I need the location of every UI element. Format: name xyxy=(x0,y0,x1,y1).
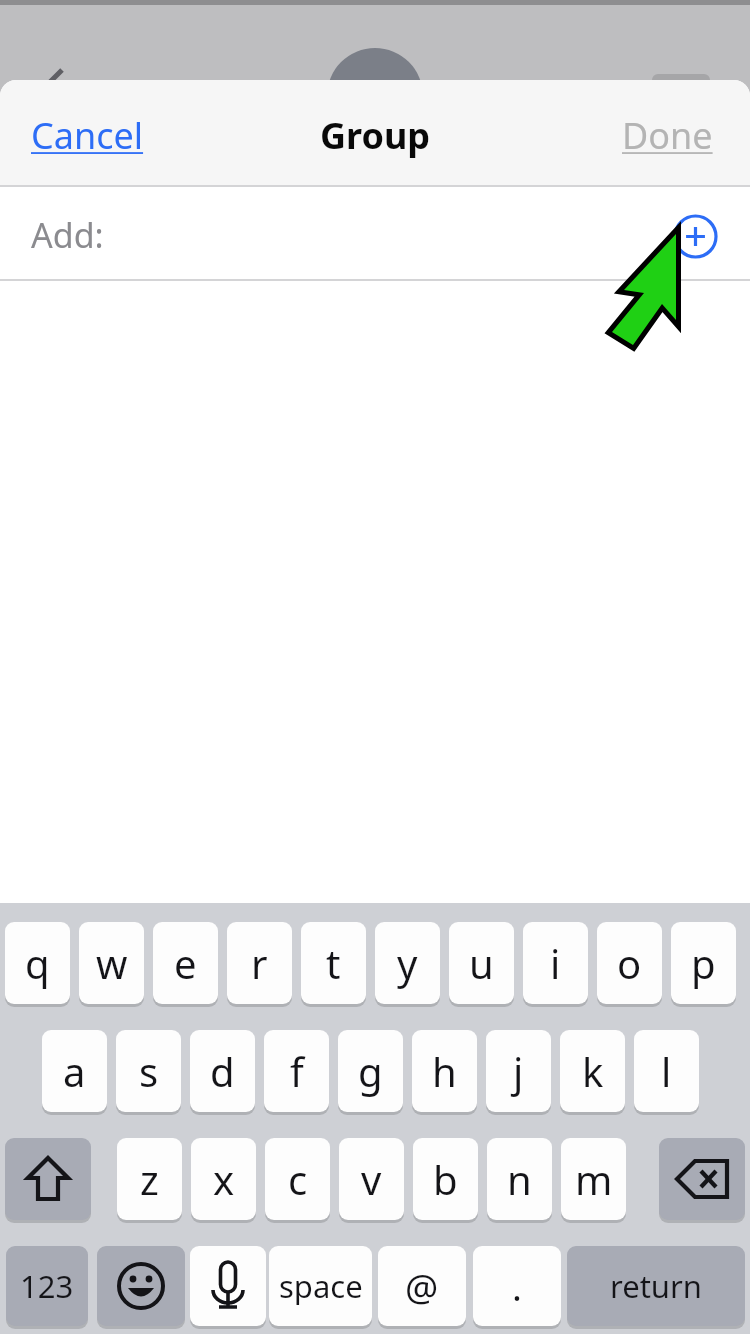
button[interactable]: Backspace xyxy=(659,1138,745,1220)
staticText: b xyxy=(433,1152,458,1206)
button[interactable]: n xyxy=(487,1138,552,1220)
staticText: a xyxy=(63,1044,86,1098)
staticText: . xyxy=(512,1261,522,1311)
staticText: Add: xyxy=(31,212,104,258)
button[interactable]: i xyxy=(523,922,588,1004)
button[interactable]: z xyxy=(117,1138,182,1220)
staticText: c xyxy=(288,1152,308,1206)
button[interactable]: y xyxy=(375,922,440,1004)
button[interactable]: g xyxy=(338,1030,403,1112)
button[interactable]: b xyxy=(413,1138,478,1220)
button[interactable]: w xyxy=(79,922,144,1004)
button[interactable]: Done xyxy=(598,108,736,162)
button[interactable]: p xyxy=(671,922,736,1004)
button[interactable]: 123 xyxy=(6,1246,88,1326)
button[interactable]: q xyxy=(5,922,70,1004)
staticText: u xyxy=(469,936,494,990)
staticText: e xyxy=(174,936,197,990)
button[interactable]: e xyxy=(153,922,218,1004)
button[interactable]: u xyxy=(449,922,514,1004)
button[interactable]: @ xyxy=(378,1246,466,1326)
staticText: z xyxy=(140,1152,159,1206)
button[interactable]: a xyxy=(42,1030,107,1112)
staticText: y xyxy=(397,936,418,990)
staticText: Group xyxy=(320,111,431,160)
button[interactable]: h xyxy=(412,1030,477,1112)
staticText: q xyxy=(25,936,50,990)
staticText: @ xyxy=(405,1261,439,1311)
button[interactable]: o xyxy=(597,922,662,1004)
staticText: 123 xyxy=(20,1265,74,1307)
button[interactable]: Add contact xyxy=(673,214,718,259)
staticText: k xyxy=(582,1044,604,1098)
staticText: space xyxy=(279,1265,363,1307)
button[interactable]: c xyxy=(265,1138,330,1220)
button[interactable]: . xyxy=(473,1246,561,1326)
button[interactable]: s xyxy=(116,1030,181,1112)
staticText: n xyxy=(507,1152,532,1206)
staticText: Done xyxy=(622,111,713,160)
button[interactable]: l xyxy=(634,1030,699,1112)
button[interactable]: r xyxy=(227,922,292,1004)
button[interactable]: space xyxy=(269,1246,372,1326)
staticText: return xyxy=(610,1265,702,1307)
staticText: r xyxy=(251,936,268,990)
staticText: f xyxy=(290,1044,304,1098)
button[interactable]: j xyxy=(486,1030,551,1112)
button[interactable]: Emoji xyxy=(97,1246,185,1326)
button[interactable]: x xyxy=(191,1138,256,1220)
button[interactable]: f xyxy=(264,1030,329,1112)
button[interactable]: k xyxy=(560,1030,625,1112)
button[interactable]: Add: xyxy=(0,187,750,279)
staticText: t xyxy=(326,936,341,990)
staticText: h xyxy=(432,1044,457,1098)
staticText: x xyxy=(213,1152,235,1206)
staticText: j xyxy=(513,1044,524,1098)
staticText: Cancel xyxy=(31,111,144,160)
staticText: v xyxy=(361,1152,382,1206)
staticText: i xyxy=(550,936,561,990)
button[interactable]: Shift xyxy=(5,1138,91,1220)
staticText: p xyxy=(691,936,716,990)
staticText: l xyxy=(661,1044,672,1098)
staticText: d xyxy=(210,1044,235,1098)
button[interactable]: Cancel xyxy=(14,108,160,162)
button[interactable]: m xyxy=(561,1138,626,1220)
staticText: w xyxy=(96,936,128,990)
button[interactable]: Dictate xyxy=(190,1246,266,1326)
staticText: g xyxy=(358,1044,383,1098)
staticText: o xyxy=(617,936,642,990)
button[interactable]: return xyxy=(567,1246,745,1326)
button[interactable]: t xyxy=(301,922,366,1004)
button[interactable]: d xyxy=(190,1030,255,1112)
staticText: m xyxy=(575,1152,613,1206)
staticText: s xyxy=(139,1044,159,1098)
button[interactable]: v xyxy=(339,1138,404,1220)
